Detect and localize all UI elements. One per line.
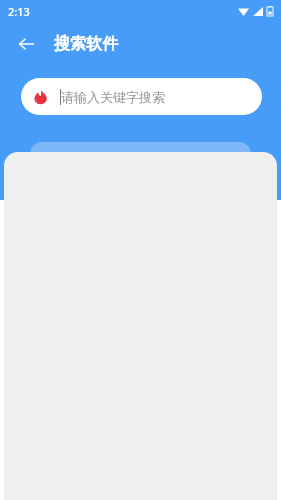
staticText: 2:13 [8,4,30,19]
button[interactable]: Back [8,26,44,62]
button[interactable]: 请输入关键字搜索 [21,78,262,115]
staticText: 请输入关键字搜索 [61,89,165,105]
staticText: 搜索软件 [54,34,118,54]
